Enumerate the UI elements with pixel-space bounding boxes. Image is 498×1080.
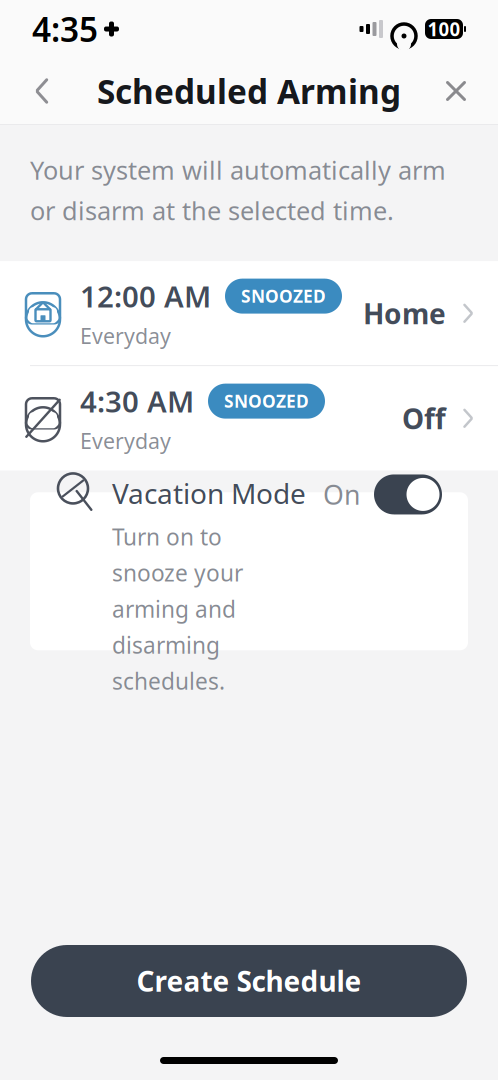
button[interactable]: Vacation Mode toggle: [323, 446, 468, 514]
staticText: Off: [402, 400, 446, 437]
staticText: 4:35: [32, 7, 98, 51]
staticText: Scheduled Arming: [97, 69, 401, 113]
staticText: SNOOZED: [224, 390, 309, 413]
staticText: 100: [427, 17, 460, 41]
button[interactable]: Create Schedule: [31, 945, 467, 1017]
staticText: On: [323, 477, 360, 512]
staticText: Vacation Mode: [112, 474, 306, 512]
button[interactable]: Close: [428, 63, 484, 119]
staticText: 4:30 AM: [80, 382, 194, 421]
staticText: Turn on to snooze your arming and disarm…: [112, 522, 243, 696]
staticText: Create Schedule: [136, 962, 361, 1000]
button[interactable]: Back: [14, 63, 70, 119]
staticText: Everyday: [80, 322, 171, 350]
staticText: SNOOZED: [241, 285, 326, 308]
staticText: Your system will automatically arm or di…: [30, 153, 446, 227]
button[interactable]: 4:30 AM: [0, 366, 498, 470]
staticText: Everyday: [80, 427, 171, 455]
staticText: 12:00 AM: [80, 277, 211, 316]
button[interactable]: 12:00 AM: [0, 261, 498, 365]
staticText: Home: [363, 295, 446, 332]
